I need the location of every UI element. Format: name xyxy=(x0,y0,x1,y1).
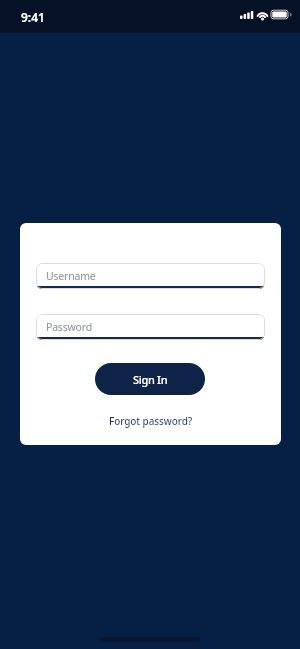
button[interactable]: Sign In xyxy=(95,363,205,395)
staticText: Username xyxy=(46,269,96,283)
staticText: Forgot password? xyxy=(109,414,193,428)
staticText: Password xyxy=(46,320,92,334)
staticText: Sign In xyxy=(133,372,168,387)
staticText: 9:41 xyxy=(21,9,45,25)
button[interactable]: Password xyxy=(36,314,265,340)
button[interactable]: Username xyxy=(36,263,265,289)
button[interactable]: Forgot password? xyxy=(20,411,281,431)
